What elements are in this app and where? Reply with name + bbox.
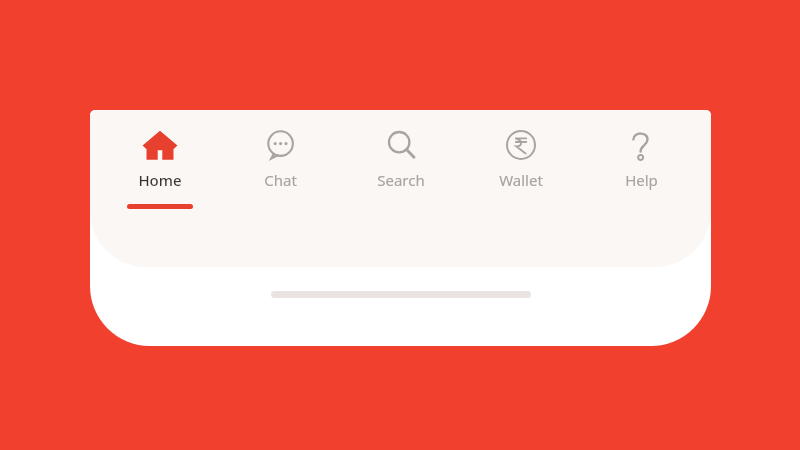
staticText: Help bbox=[625, 170, 658, 190]
button[interactable]: Home bbox=[110, 110, 210, 209]
button[interactable]: Search bbox=[351, 110, 451, 204]
staticText: Home bbox=[138, 170, 182, 190]
staticText: Search bbox=[377, 170, 425, 190]
staticText: Wallet bbox=[499, 170, 543, 190]
staticText: Chat bbox=[264, 170, 297, 190]
button[interactable]: Chat bbox=[230, 110, 330, 204]
button[interactable]: Help bbox=[591, 110, 691, 204]
button[interactable]: Wallet bbox=[471, 110, 571, 204]
